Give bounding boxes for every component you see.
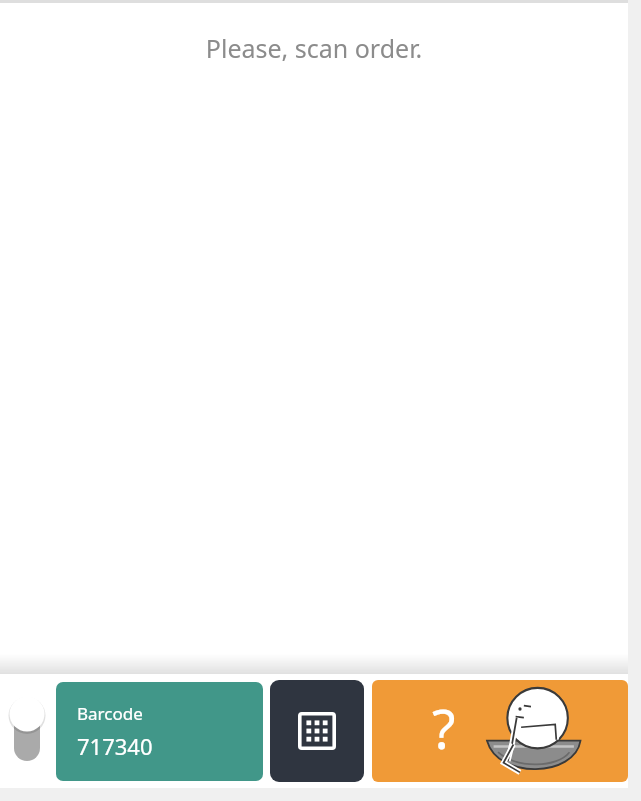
staticText: 717340 [77,731,153,761]
button[interactable]: Keypad [270,680,364,782]
button[interactable]: Help [372,680,628,782]
staticText: Barcode [77,702,143,725]
staticText: Please, scan order. [0,31,628,65]
staticText: ? [432,691,456,765]
button[interactable]: Toggle [6,691,48,771]
button[interactable]: Barcode [56,682,263,781]
